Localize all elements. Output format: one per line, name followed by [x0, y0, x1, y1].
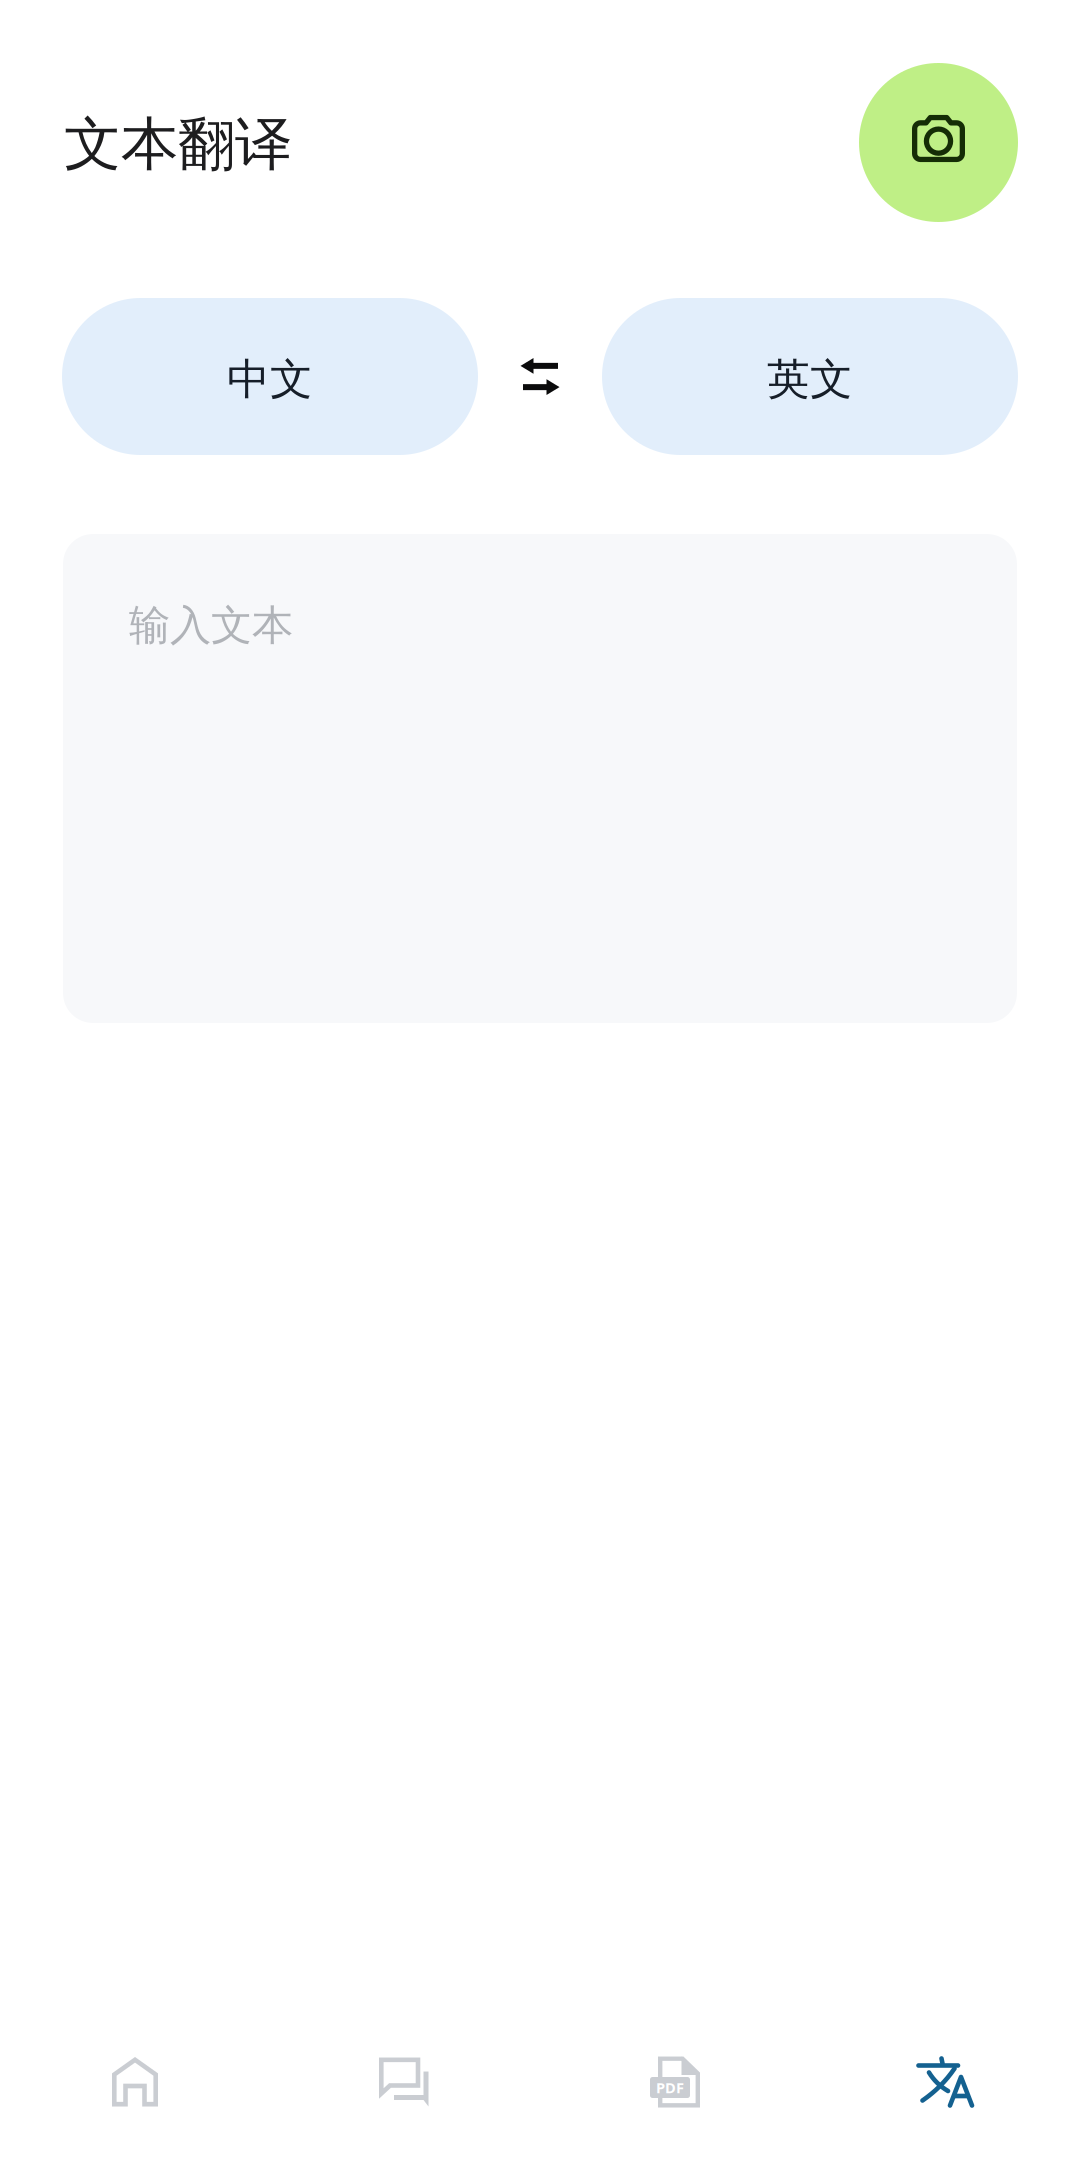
button[interactable]: Text translation [810, 2026, 1080, 2138]
staticText: 中文 [227, 353, 313, 406]
button[interactable]: Camera translation [859, 63, 1018, 222]
staticText: 文本翻译 [64, 109, 292, 180]
button[interactable]: 英文 [602, 298, 1018, 455]
staticText: 英文 [767, 353, 853, 406]
button[interactable]: 中文 [62, 298, 478, 455]
button[interactable]: Conversation [270, 2026, 540, 2138]
staticText: PDF [656, 2078, 684, 2097]
button[interactable]: Swap languages [478, 298, 601, 455]
staticText: 输入文本 [129, 600, 293, 651]
button[interactable]: Document translation [540, 2026, 810, 2138]
button[interactable]: Home [0, 2026, 270, 2138]
button[interactable]: 输入文本 [63, 534, 1017, 1023]
